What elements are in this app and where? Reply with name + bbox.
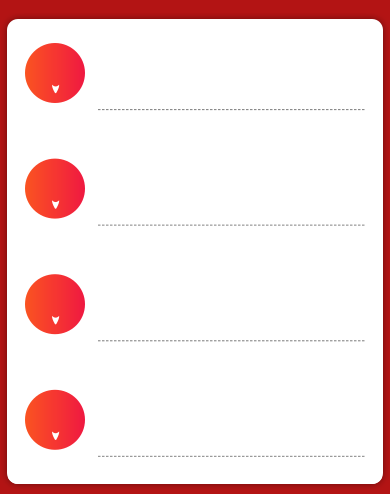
button[interactable]: Entry [8,43,382,159]
button[interactable]: Entry [8,159,382,274]
button[interactable]: Entry [8,274,382,390]
button[interactable]: Entry [8,390,382,494]
